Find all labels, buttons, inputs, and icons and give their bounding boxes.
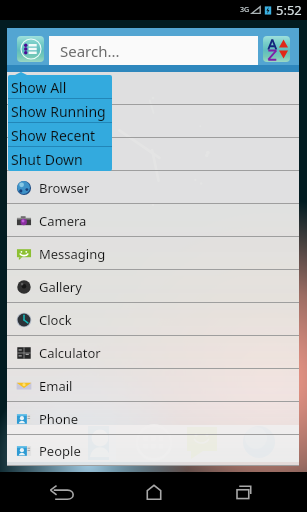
button[interactable]: Show menu bbox=[17, 36, 44, 62]
button[interactable]: Back bbox=[35, 472, 91, 512]
button[interactable]: Calculator bbox=[7, 336, 299, 369]
button[interactable]: Sort alphabetically bbox=[263, 36, 290, 62]
staticText: Browser bbox=[39, 179, 90, 197]
button[interactable]: Browser bbox=[7, 171, 299, 204]
button[interactable]: People bbox=[7, 435, 299, 466]
button[interactable]: Home bbox=[126, 472, 182, 512]
button[interactable]: Phone bbox=[7, 402, 299, 435]
staticText: Phone bbox=[39, 410, 79, 428]
button[interactable]: Music bbox=[7, 138, 299, 171]
staticText: Search... bbox=[60, 41, 120, 61]
staticText: 3G bbox=[240, 5, 250, 15]
button[interactable]: Recent apps bbox=[216, 472, 272, 512]
staticText: Settings bbox=[39, 80, 89, 98]
staticText: Show Running bbox=[11, 102, 106, 121]
staticText: Show All bbox=[11, 78, 67, 97]
button[interactable]: Calendar bbox=[7, 105, 299, 138]
button[interactable]: Messaging bbox=[7, 237, 299, 270]
staticText: 5:52 bbox=[276, 1, 302, 19]
staticText: Calculator bbox=[39, 344, 101, 362]
button[interactable]: Shut Down bbox=[8, 147, 112, 171]
staticText: Shut Down bbox=[11, 150, 83, 169]
staticText: Calendar bbox=[39, 113, 94, 131]
button[interactable]: Camera bbox=[7, 204, 299, 237]
button[interactable]: Show Running bbox=[8, 99, 112, 123]
staticText: Email bbox=[39, 377, 73, 395]
staticText: Clock bbox=[39, 311, 72, 329]
staticText: People bbox=[39, 442, 81, 460]
staticText: Camera bbox=[39, 212, 87, 230]
staticText: Show Recent bbox=[11, 126, 96, 145]
button[interactable]: Show Recent bbox=[8, 123, 112, 147]
button[interactable]: Email bbox=[7, 369, 299, 402]
button[interactable]: Gallery bbox=[7, 270, 299, 303]
staticText: Gallery bbox=[39, 278, 82, 296]
button[interactable]: Clock bbox=[7, 303, 299, 336]
button[interactable]: Search... bbox=[49, 36, 258, 65]
button[interactable]: Show All bbox=[8, 75, 112, 99]
staticText: Messaging bbox=[39, 245, 106, 263]
button[interactable]: Settings bbox=[7, 72, 299, 105]
staticText: Music bbox=[39, 146, 75, 164]
